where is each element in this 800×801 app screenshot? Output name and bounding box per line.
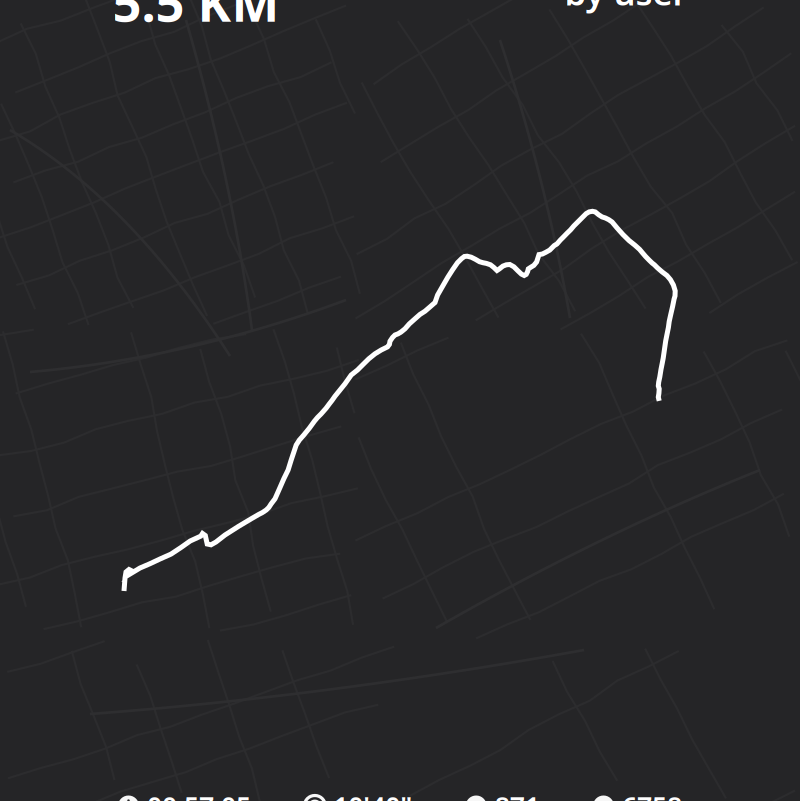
staticText: 5.5 KM — [112, 0, 279, 36]
staticText: 6758 — [622, 788, 682, 801]
staticText: by user — [564, 0, 687, 15]
staticText: 00:57:05 — [147, 788, 251, 801]
staticText: 10'40" — [333, 788, 412, 801]
staticText: 871 — [495, 788, 540, 801]
